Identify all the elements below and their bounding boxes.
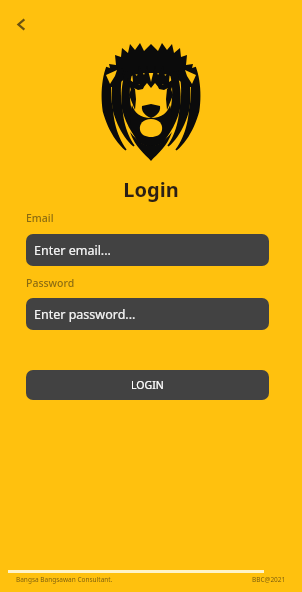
button[interactable]: Enter password... [26,298,269,330]
staticText: Enter password... [34,306,136,323]
button[interactable]: Enter email... [26,234,269,266]
staticText: Bangsa Bangsawan Consultant. [16,575,113,584]
button[interactable]: LOGIN [26,370,269,400]
staticText: LOGIN [131,378,164,392]
button[interactable]: Back [8,11,34,37]
staticText: Email [26,211,54,225]
staticText: Password [26,276,75,290]
staticText: Login [123,176,179,203]
staticText: BBC@2021 [252,575,286,584]
staticText: Enter email... [34,242,111,259]
